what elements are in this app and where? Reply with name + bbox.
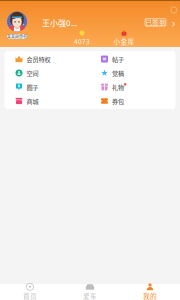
button[interactable]: 4073 [62,30,102,46]
button[interactable]: 帖子 [90,52,175,66]
staticText: 礼物 [112,83,124,91]
staticText: 某某勋章名 [7,33,27,39]
staticText: 帖子 [112,55,124,63]
button[interactable]: 某某勋章名 [7,34,27,39]
staticText: 圈子 [26,83,38,91]
button[interactable]: 王小强0... [42,17,77,29]
staticText: 爱车 [83,291,97,300]
button[interactable]: Settings [168,4,180,16]
button[interactable]: 觉稿 [90,66,175,80]
button[interactable]: Profile photo [7,11,27,31]
button[interactable]: 礼物 [90,80,175,94]
staticText: 小金库 [113,36,134,46]
staticText: 会员特权 [26,55,50,63]
staticText: 空间 [26,69,38,77]
button[interactable]: 券包 [90,94,175,108]
button[interactable]: 空间 [4,66,90,80]
button[interactable]: 会员特权 [4,52,90,66]
button[interactable]: 已签到 [145,18,166,26]
staticText: 4073 [74,36,90,46]
button[interactable]: More [170,19,177,29]
staticText: 商城 [26,97,38,105]
staticText: 我的 [143,291,157,300]
staticText: 首页 [23,291,37,300]
button[interactable]: 商城 [4,94,90,108]
staticText: 券包 [112,97,124,105]
button[interactable]: 首页 [0,284,60,300]
button[interactable]: 爱车 [60,284,120,300]
staticText: 觉稿 [112,69,124,77]
staticText: 已签到 [145,17,166,27]
button[interactable]: 圈子 [4,80,90,94]
staticText: 王小强0... [42,17,77,29]
button[interactable]: 小金库 [104,30,144,46]
button[interactable]: 我的 [120,284,180,300]
